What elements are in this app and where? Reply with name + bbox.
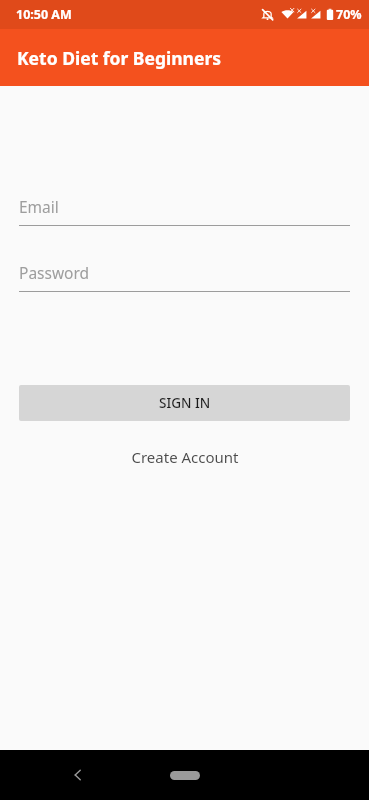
staticText: Email bbox=[19, 196, 59, 217]
button[interactable]: Create Account bbox=[0, 447, 369, 467]
staticText: Keto Diet for Beginners bbox=[17, 46, 222, 70]
button[interactable]: SIGN IN bbox=[19, 385, 350, 421]
staticText: 70% bbox=[336, 6, 362, 23]
staticText: SIGN IN bbox=[159, 394, 211, 412]
staticText: Password bbox=[19, 262, 90, 283]
staticText: 10:50 AM bbox=[16, 6, 72, 23]
button[interactable]: Password bbox=[19, 262, 350, 292]
button[interactable]: Back bbox=[62, 759, 94, 791]
button[interactable]: Home bbox=[161, 762, 209, 788]
staticText: Create Account bbox=[131, 447, 239, 467]
button[interactable]: Email bbox=[19, 196, 350, 226]
